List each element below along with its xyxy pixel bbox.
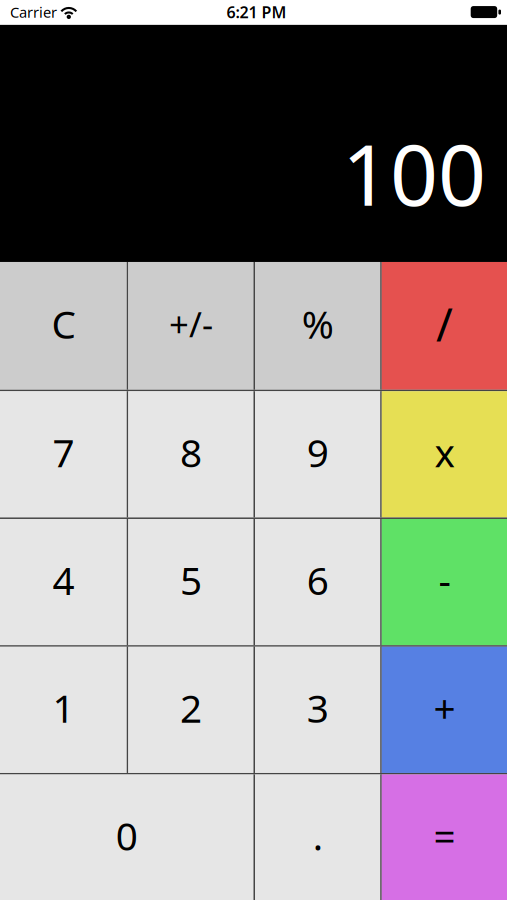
- staticText: 3: [307, 682, 329, 733]
- staticText: /: [436, 294, 453, 354]
- staticText: -: [438, 554, 450, 606]
- button[interactable]: 0: [0, 774, 253, 900]
- staticText: 5: [180, 554, 202, 606]
- button[interactable]: 7: [0, 391, 127, 517]
- staticText: 1: [52, 682, 74, 733]
- button[interactable]: 9: [253, 391, 380, 517]
- staticText: %: [302, 298, 334, 349]
- staticText: 6: [307, 554, 329, 606]
- button[interactable]: %: [253, 262, 380, 390]
- staticText: 0: [116, 810, 138, 861]
- button[interactable]: 3: [253, 647, 380, 773]
- button[interactable]: .: [253, 774, 380, 900]
- button[interactable]: 4: [0, 519, 127, 645]
- button[interactable]: 6: [253, 519, 380, 645]
- staticText: +: [433, 682, 455, 733]
- staticText: .: [313, 810, 323, 861]
- staticText: 2: [180, 682, 202, 733]
- button[interactable]: 2: [127, 647, 254, 773]
- staticText: 7: [52, 427, 74, 478]
- staticText: 9: [307, 427, 329, 478]
- staticText: +/-: [169, 301, 213, 347]
- button[interactable]: /: [380, 262, 507, 390]
- staticText: x: [434, 427, 454, 478]
- button[interactable]: 8: [127, 391, 254, 517]
- button[interactable]: 1: [0, 647, 127, 773]
- button[interactable]: -: [380, 519, 507, 645]
- button[interactable]: +: [380, 647, 507, 773]
- button[interactable]: +/-: [127, 262, 254, 390]
- button[interactable]: 5: [127, 519, 254, 645]
- staticText: 100: [342, 117, 486, 229]
- staticText: =: [433, 810, 455, 861]
- button[interactable]: C: [0, 262, 127, 390]
- button[interactable]: x: [380, 391, 507, 517]
- staticText: 4: [52, 554, 74, 606]
- staticText: Carrier: [10, 2, 57, 22]
- staticText: 6:21 PM: [226, 1, 286, 23]
- button[interactable]: =: [380, 774, 507, 900]
- staticText: 8: [180, 427, 202, 478]
- staticText: C: [51, 298, 75, 349]
